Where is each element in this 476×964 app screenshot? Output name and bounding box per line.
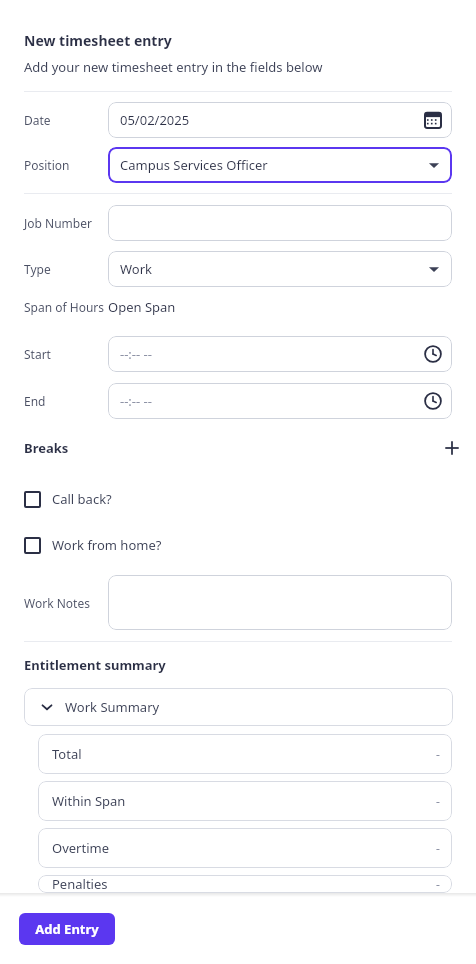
staticText: Breaks	[24, 439, 69, 457]
button[interactable]: Campus Services Officer	[108, 147, 452, 183]
button[interactable]: Work	[108, 251, 452, 287]
button[interactable]: Overtime	[38, 828, 452, 868]
button[interactable]: Work Summary	[24, 688, 453, 726]
staticText: Work Summary	[65, 698, 160, 716]
button[interactable]: --:-- --	[108, 383, 452, 419]
staticText: -	[436, 876, 440, 892]
button[interactable]: Pick end time	[424, 392, 442, 410]
staticText: Add your new timesheet entry in the fiel…	[24, 58, 323, 76]
button[interactable]: Work from home?	[0, 522, 476, 568]
button[interactable]: Pick date	[424, 111, 442, 129]
staticText: --:-- --	[120, 392, 152, 410]
staticText: Span of Hours	[24, 299, 105, 315]
button[interactable]	[108, 205, 452, 241]
staticText: Within Span	[52, 792, 126, 810]
staticText: Date	[24, 112, 51, 128]
staticText: -	[436, 840, 440, 856]
staticText: Job Number	[24, 215, 92, 231]
staticText: Campus Services Officer	[120, 156, 268, 174]
staticText: End	[24, 393, 46, 409]
button[interactable]: Work notes	[108, 575, 452, 630]
staticText: --:-- --	[120, 345, 152, 363]
staticText: Penalties	[52, 875, 108, 893]
staticText: Overtime	[52, 839, 109, 857]
button[interactable]: Add break	[438, 437, 466, 459]
button[interactable]: Total	[38, 734, 452, 774]
staticText: 05/02/2025	[120, 111, 190, 129]
staticText: Call back?	[52, 490, 112, 508]
button[interactable]: Within Span	[38, 781, 452, 821]
staticText: Total	[52, 745, 82, 763]
staticText: -	[436, 746, 440, 762]
staticText: Work Notes	[24, 595, 90, 611]
button[interactable]: Call back?	[0, 476, 476, 522]
staticText: Work	[120, 260, 153, 278]
button[interactable]: Add Entry	[19, 913, 115, 945]
staticText: Start	[24, 346, 51, 362]
button[interactable]: 05/02/2025	[108, 102, 452, 138]
staticText: Type	[24, 261, 51, 277]
button[interactable]: Pick start time	[424, 345, 442, 363]
staticText: Open Span	[108, 298, 176, 316]
staticText: Position	[24, 157, 70, 173]
button[interactable]: --:-- --	[108, 336, 452, 372]
staticText: Work from home?	[52, 536, 162, 554]
button[interactable]: Penalties	[38, 875, 452, 893]
staticText: New timesheet entry	[24, 31, 172, 50]
staticText: -	[436, 793, 440, 809]
staticText: Entitlement summary	[24, 656, 166, 674]
staticText: Add Entry	[35, 920, 99, 938]
